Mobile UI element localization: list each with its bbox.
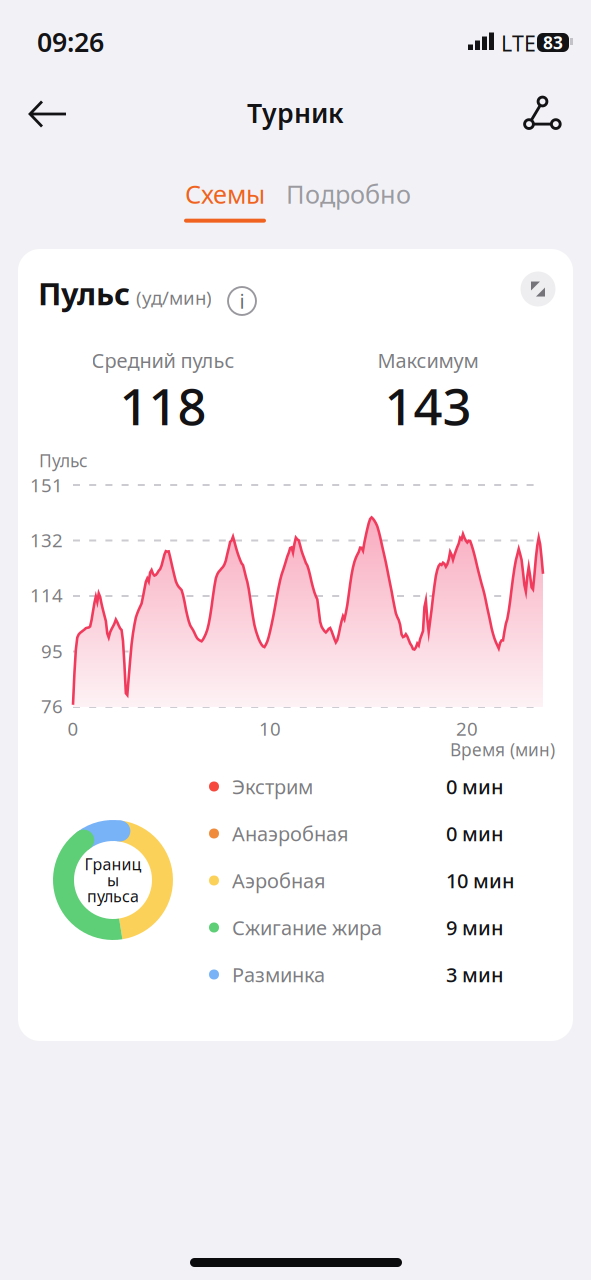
- staticText: 76: [41, 694, 63, 718]
- staticText: 09:26: [37, 24, 104, 59]
- button[interactable]: Информация: [225, 284, 259, 318]
- button[interactable]: Схемы: [179, 172, 271, 228]
- staticText: LTE: [501, 29, 536, 57]
- staticText: Время (мин): [450, 738, 555, 761]
- staticText: Экстрим: [232, 773, 313, 800]
- staticText: Максимум: [377, 347, 478, 374]
- staticText: 20: [456, 716, 478, 741]
- staticText: Аэробная: [232, 867, 326, 894]
- staticText: 9 мин: [446, 914, 504, 941]
- staticText: (уд/мин): [136, 285, 212, 310]
- staticText: Разминка: [232, 961, 325, 988]
- staticText: Подробно: [286, 177, 411, 211]
- staticText: i: [239, 288, 244, 314]
- staticText: ы: [107, 869, 119, 891]
- staticText: Анаэробная: [232, 820, 349, 847]
- staticText: 83: [543, 31, 563, 54]
- staticText: Турник: [247, 95, 344, 130]
- button[interactable]: Развернуть: [515, 266, 561, 312]
- staticText: Пульс: [39, 449, 88, 472]
- staticText: 0 мин: [446, 773, 504, 800]
- staticText: 0: [67, 716, 78, 741]
- staticText: 10 мин: [446, 867, 515, 894]
- staticText: пульса: [87, 885, 139, 907]
- button[interactable]: Поделиться: [510, 83, 576, 143]
- staticText: 3 мин: [446, 961, 504, 988]
- staticText: Схемы: [185, 177, 265, 211]
- staticText: Средний пульс: [91, 347, 234, 374]
- staticText: 143: [384, 372, 471, 439]
- staticText: 0 мин: [446, 820, 504, 847]
- staticText: 132: [30, 528, 63, 552]
- staticText: 118: [119, 372, 206, 439]
- staticText: 95: [41, 639, 63, 663]
- button[interactable]: Подробно: [281, 172, 416, 228]
- staticText: Пульс: [38, 273, 130, 314]
- staticText: Сжигание жира: [232, 914, 382, 941]
- staticText: 10: [259, 716, 281, 741]
- staticText: Границ: [84, 853, 141, 875]
- staticText: 151: [30, 473, 63, 497]
- staticText: 114: [30, 583, 63, 607]
- button[interactable]: Назад: [12, 84, 84, 144]
